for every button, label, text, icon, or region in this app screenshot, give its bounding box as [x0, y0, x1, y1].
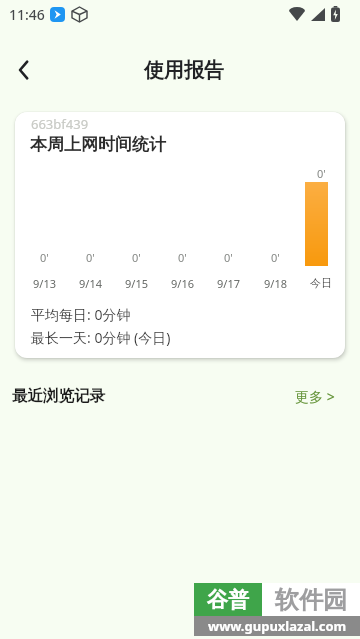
staticText: 平均每日: 0分钟 — [31, 305, 131, 324]
staticText: 9/16 — [171, 276, 194, 291]
staticText: 软件园 — [275, 585, 347, 615]
staticText: 今日 — [310, 276, 332, 290]
staticText: 0' — [178, 250, 187, 265]
staticText: 0' — [271, 250, 280, 265]
staticText: 谷普 — [207, 587, 249, 613]
staticText: 9/17 — [217, 276, 240, 291]
staticText: 0' — [224, 250, 233, 265]
staticText: 最近浏览记录 — [12, 386, 105, 406]
staticText: 9/15 — [125, 276, 148, 291]
staticText: 使用报告 — [144, 58, 224, 83]
button[interactable]: 更多 > — [295, 387, 335, 406]
staticText: 更多 > — [295, 387, 335, 406]
staticText: 本周上网时间统计 — [30, 134, 166, 155]
staticText: 9/14 — [79, 276, 102, 291]
staticText: 0' — [317, 166, 326, 181]
staticText: 0' — [132, 250, 141, 265]
staticText: 0' — [86, 250, 95, 265]
staticText: 9/13 — [33, 276, 56, 291]
staticText: 0' — [40, 250, 49, 265]
staticText: 9/18 — [264, 276, 287, 291]
staticText: 最长一天: 0分钟 (今日) — [31, 328, 171, 347]
staticText: 663bf439 — [31, 115, 89, 133]
staticText: www.gupuxlazal.com — [208, 617, 347, 635]
staticText: 11:46 — [9, 5, 45, 24]
button[interactable] — [14, 59, 34, 81]
